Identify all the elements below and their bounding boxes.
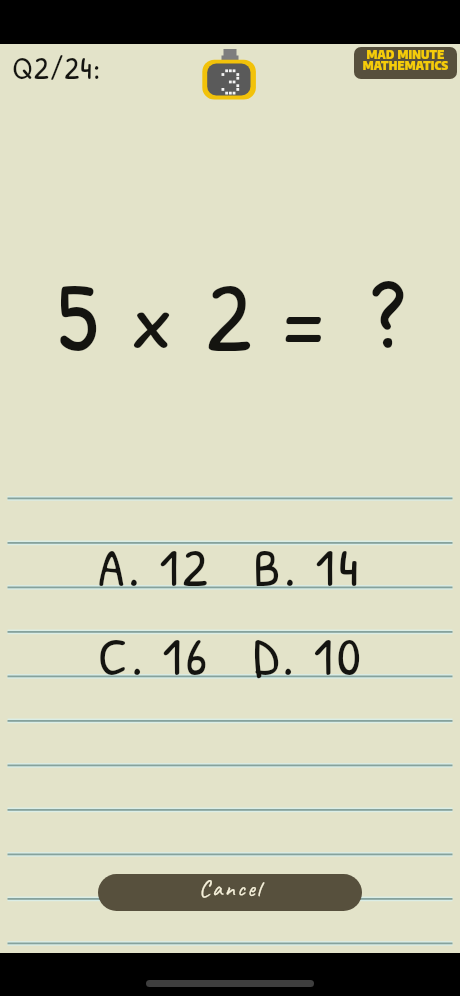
staticText: x xyxy=(130,268,174,372)
other: Timer xyxy=(200,44,258,102)
button[interactable]: D. 10 xyxy=(253,619,365,692)
staticText: D. 10 xyxy=(253,619,365,692)
staticText: Cancel xyxy=(199,874,263,903)
staticText: MAD MINUTE xyxy=(354,47,457,62)
other: Home xyxy=(146,980,314,987)
staticText: = xyxy=(275,249,331,397)
staticText: 2 xyxy=(206,250,252,381)
staticText: Q2/24: xyxy=(12,46,102,89)
staticText: ? xyxy=(369,250,405,381)
button[interactable]: A. 12 xyxy=(98,530,253,603)
button[interactable]: Cancel xyxy=(98,874,362,911)
staticText: C. 16 xyxy=(98,619,211,692)
staticText: B. 14 xyxy=(253,530,363,603)
staticText: A. 12 xyxy=(98,530,212,603)
staticText: MATHEMATICS xyxy=(354,57,457,73)
button[interactable]: C. 16 xyxy=(98,619,253,692)
staticText: 5 xyxy=(57,250,99,381)
button[interactable]: MAD MINUTE xyxy=(354,47,457,79)
button[interactable]: B. 14 xyxy=(253,530,365,603)
